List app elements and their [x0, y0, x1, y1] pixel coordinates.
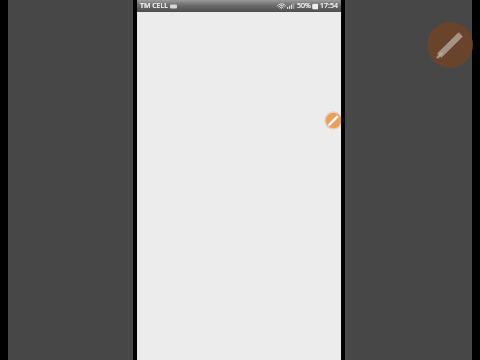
staticText: TM CELL — [140, 1, 168, 11]
staticText: 17:54 — [320, 1, 338, 11]
button[interactable]: Edit — [324, 111, 343, 130]
button[interactable]: Edit — [425, 20, 475, 70]
staticText: 50% — [297, 1, 311, 11]
